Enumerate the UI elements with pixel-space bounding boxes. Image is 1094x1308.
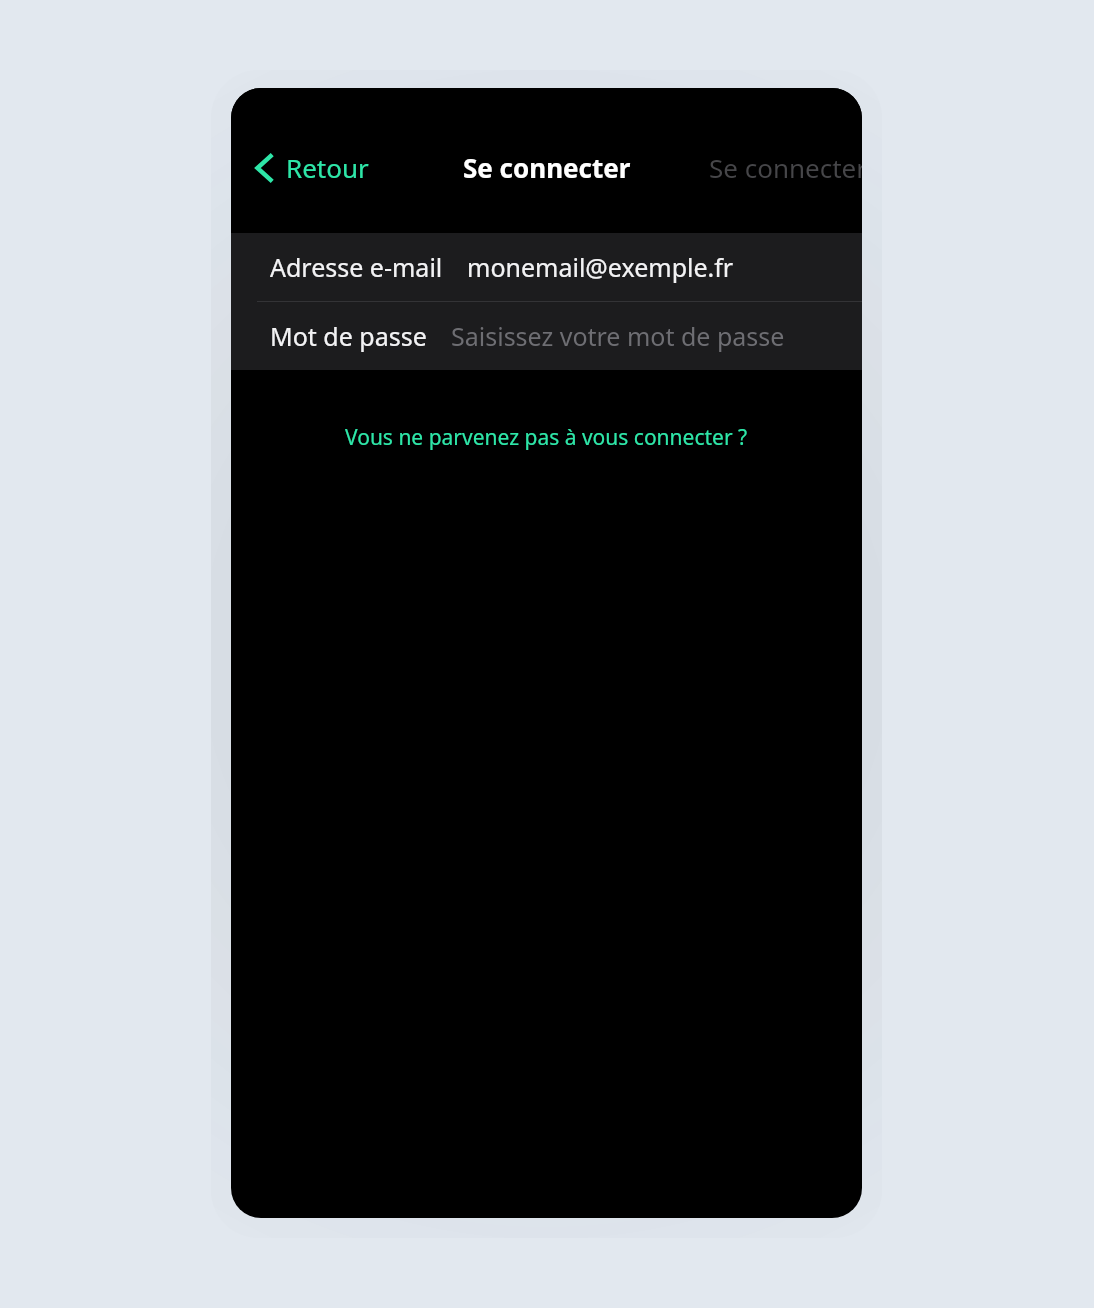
staticText: Se connecter bbox=[463, 150, 631, 185]
button[interactable]: Retour bbox=[243, 144, 379, 191]
staticText: Adresse e-mail bbox=[270, 250, 443, 284]
button[interactable]: Vous ne parvenez pas à vous connecter ? bbox=[331, 415, 762, 460]
staticText: Vous ne parvenez pas à vous connecter ? bbox=[345, 423, 748, 452]
button[interactable]: Se connecter bbox=[701, 144, 862, 191]
button[interactable]: Mot de passe bbox=[231, 302, 862, 370]
staticText: monemail@exemple.fr bbox=[467, 250, 734, 284]
staticText: Mot de passe bbox=[270, 319, 427, 353]
staticText: Retour bbox=[286, 150, 369, 185]
button[interactable]: Adresse e-mail bbox=[231, 233, 862, 301]
staticText: Saisissez votre mot de passe bbox=[451, 319, 785, 353]
staticText: Se connecter bbox=[709, 150, 862, 185]
